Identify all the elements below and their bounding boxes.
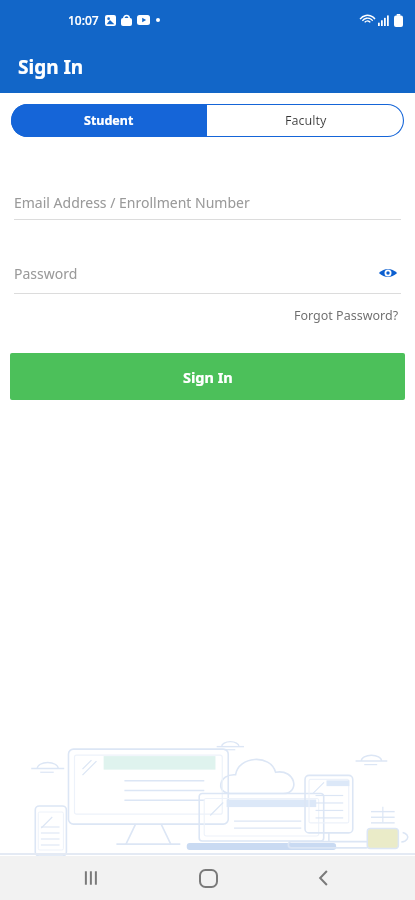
button[interactable]: Sign In: [10, 353, 405, 400]
button[interactable]: Faculty: [207, 104, 404, 137]
staticText: Faculty: [285, 112, 327, 129]
button[interactable]: Home: [182, 856, 234, 900]
staticText: Forgot Password?: [294, 307, 399, 324]
staticText: Password: [14, 264, 375, 283]
staticText: Sign In: [18, 54, 84, 80]
button[interactable]: Show password: [375, 260, 401, 286]
staticText: Email Address / Enrollment Number: [14, 193, 401, 212]
button[interactable]: Forgot Password?: [292, 305, 401, 326]
staticText: Sign In: [183, 367, 233, 387]
button[interactable]: Student: [11, 104, 207, 137]
staticText: Student: [84, 112, 134, 129]
button[interactable]: Recent apps: [65, 856, 117, 900]
button[interactable]: Back: [298, 856, 350, 900]
staticText: 10:07: [68, 12, 99, 28]
